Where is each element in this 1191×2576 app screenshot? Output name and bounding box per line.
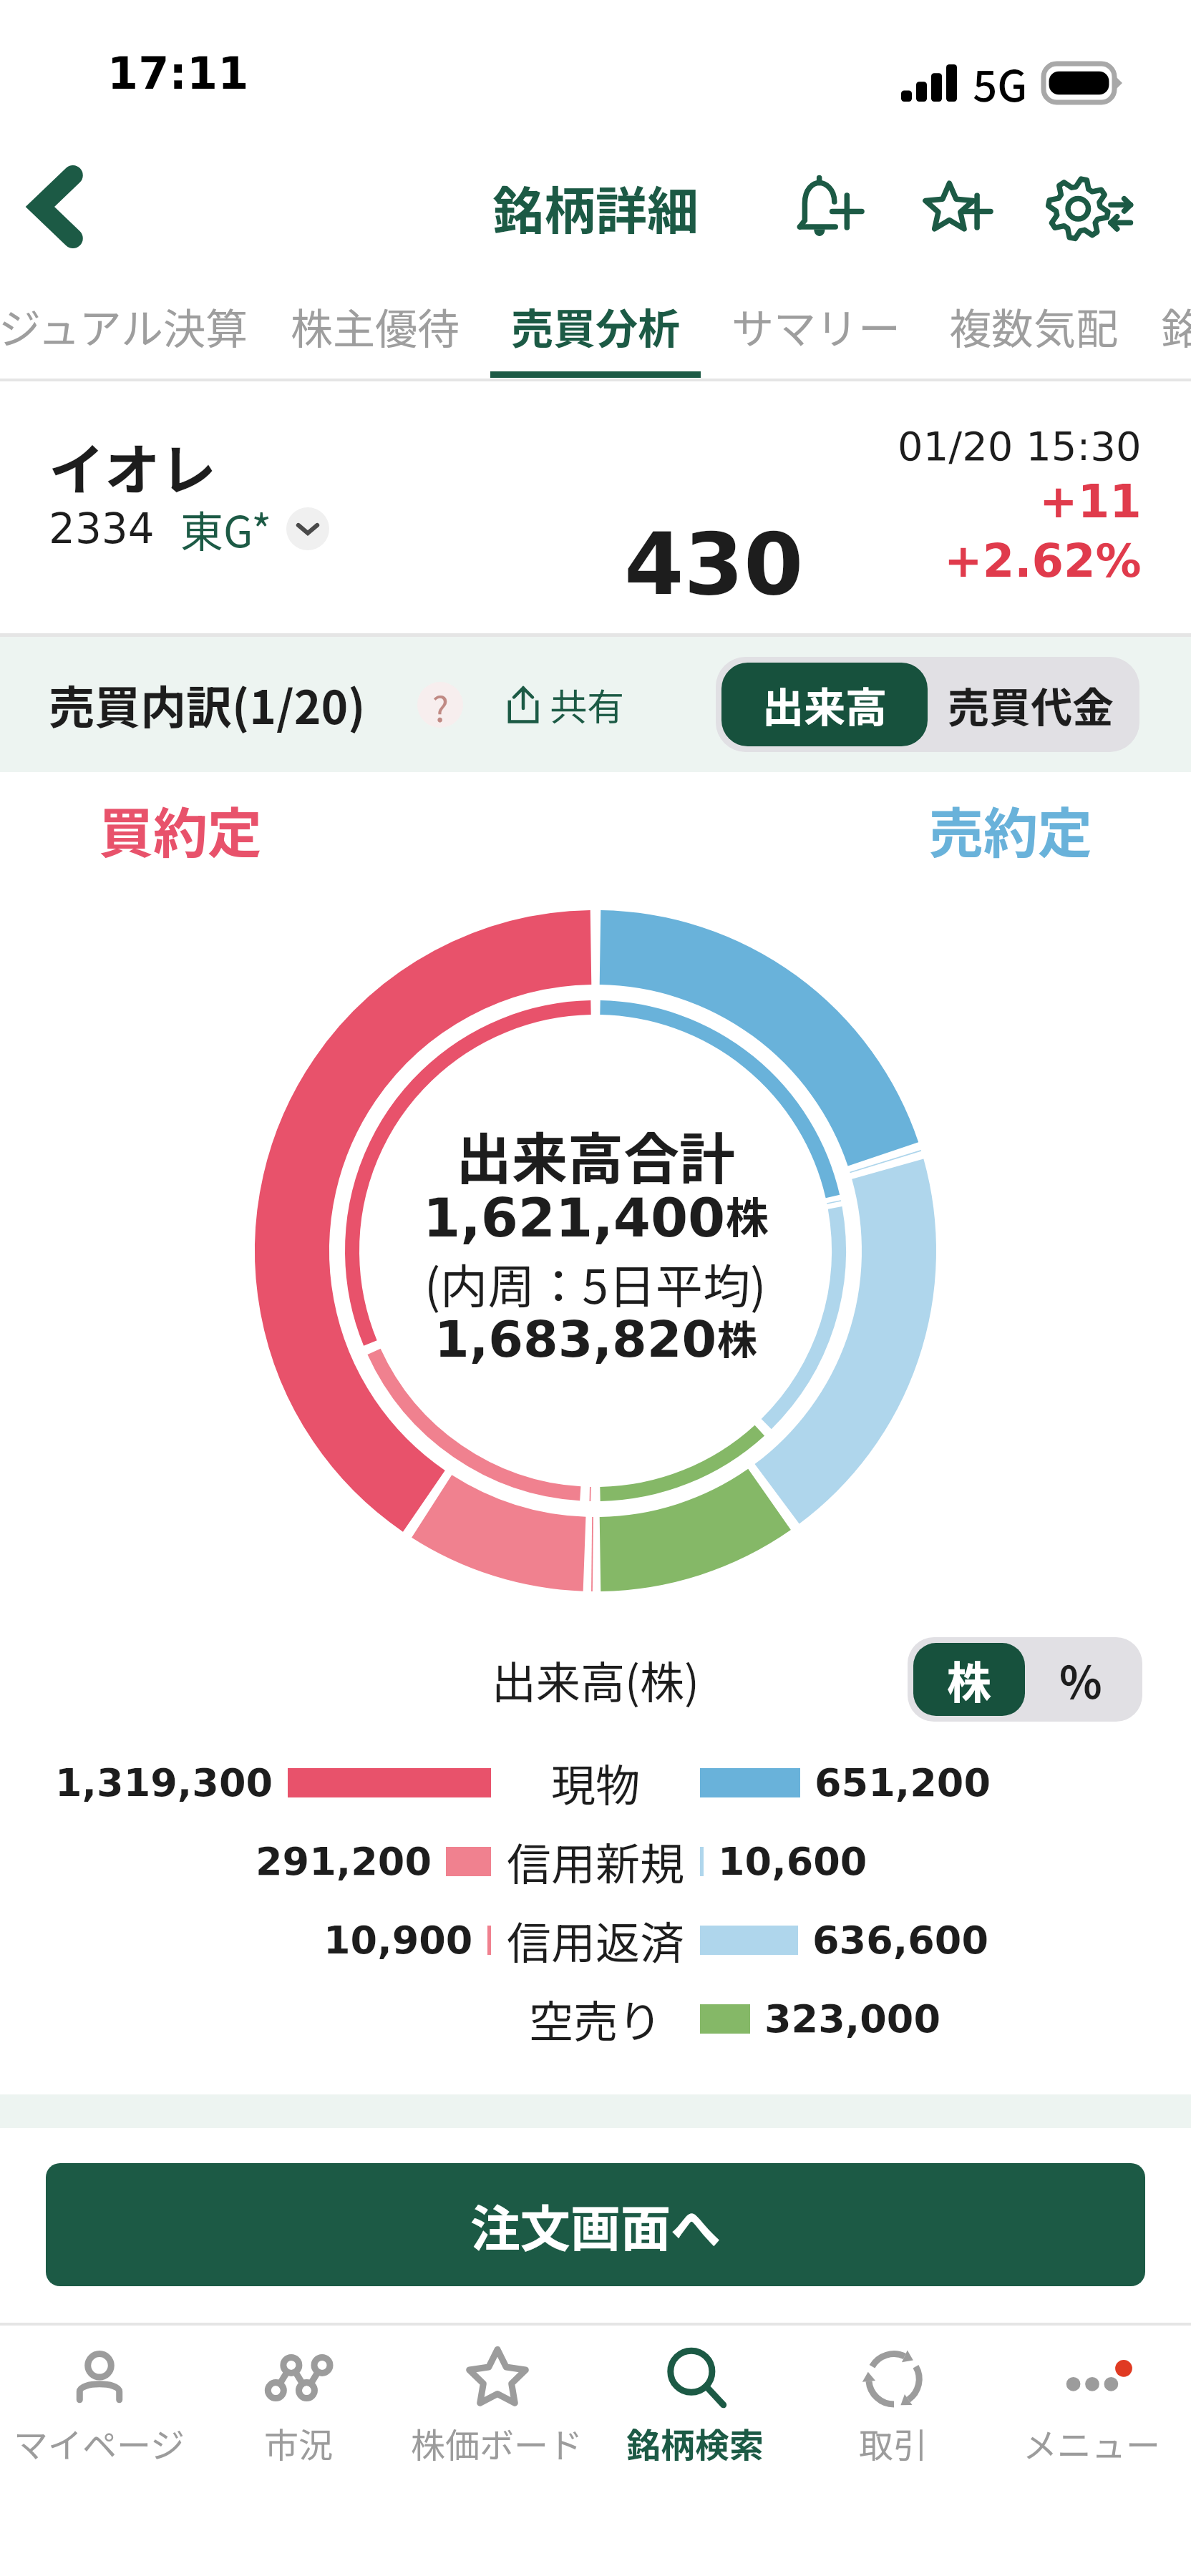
- staticText: 17:11: [107, 47, 249, 99]
- staticText: 銘柄検索: [626, 2418, 764, 2468]
- button[interactable]: 株: [913, 1643, 1025, 1716]
- button[interactable]: 複数気配: [924, 278, 1143, 381]
- staticText: 売買代金: [948, 675, 1114, 735]
- staticText: 売買分析: [511, 296, 681, 356]
- button[interactable]: 銘: [1137, 278, 1191, 381]
- staticText: 株: [717, 1308, 757, 1366]
- button[interactable]: 株価ボード: [398, 2326, 596, 2504]
- staticText: %: [1059, 1647, 1102, 1712]
- staticText: 10,900: [324, 1918, 473, 1963]
- button[interactable]: 売買分析: [486, 278, 705, 381]
- button[interactable]: 市場を切り替え: [286, 507, 329, 550]
- button[interactable]: マイページ: [0, 2326, 199, 2504]
- staticText: 複数気配: [949, 296, 1119, 356]
- staticText: 出来高: [762, 675, 888, 735]
- staticText: 注文画面へ: [470, 2189, 721, 2261]
- button[interactable]: 注文画面へ: [46, 2163, 1145, 2286]
- staticText: 現物: [551, 1750, 641, 1815]
- button[interactable]: お気に入り追加: [912, 160, 1006, 254]
- button[interactable]: 出来高: [721, 663, 928, 746]
- staticText: サマリー: [731, 296, 901, 356]
- staticText: 株: [947, 1647, 992, 1712]
- button[interactable]: %: [1025, 1643, 1137, 1716]
- staticText: +11: [1039, 475, 1142, 529]
- button[interactable]: 銘柄検索: [596, 2326, 794, 2504]
- staticText: (内周：5日平均): [424, 1249, 767, 1317]
- staticText: ジュアル決算: [0, 296, 248, 356]
- staticText: 5G: [973, 52, 1028, 114]
- staticText: 651,200: [815, 1760, 991, 1805]
- staticText: 株主優待: [291, 296, 460, 356]
- button[interactable]: 共有: [501, 670, 625, 738]
- staticText: 01/20 15:30: [898, 423, 1142, 469]
- staticText: 買約定: [99, 790, 262, 869]
- staticText: 売約定: [929, 790, 1092, 869]
- button[interactable]: 取引: [794, 2326, 993, 2504]
- staticText: イオレ: [49, 426, 217, 507]
- staticText: 株価ボード: [411, 2418, 583, 2468]
- staticText: マイページ: [14, 2418, 185, 2468]
- staticText: 636,600: [812, 1918, 988, 1963]
- staticText: 空売り: [529, 1986, 663, 2051]
- staticText: 1,621,400: [423, 1186, 726, 1249]
- staticText: メニュー: [1023, 2418, 1161, 2468]
- staticText: 430: [624, 514, 804, 615]
- staticText: 信用新規: [507, 1829, 685, 1893]
- button[interactable]: ヘルプ: [417, 682, 463, 728]
- button[interactable]: 市況: [199, 2326, 398, 2504]
- button[interactable]: 株主優待: [266, 278, 485, 381]
- staticText: 10,600: [718, 1839, 867, 1884]
- staticText: 銘柄詳細: [492, 170, 699, 244]
- staticText: 291,200: [256, 1839, 432, 1884]
- staticText: 東G*: [180, 497, 272, 560]
- button[interactable]: ジュアル決算: [0, 278, 276, 381]
- staticText: 共有: [550, 678, 625, 731]
- button[interactable]: 戻る: [9, 160, 102, 253]
- staticText: 銘: [1161, 296, 1191, 356]
- staticText: 1,319,300: [55, 1760, 273, 1805]
- staticText: 株: [726, 1184, 769, 1246]
- staticText: 市況: [264, 2418, 334, 2468]
- staticText: 2334: [49, 504, 155, 553]
- staticText: 売買内訳(1/20): [49, 671, 366, 738]
- button[interactable]: メニュー: [993, 2326, 1191, 2504]
- button[interactable]: 株価アラート追加: [782, 160, 876, 254]
- button[interactable]: 売買代金: [928, 663, 1134, 746]
- staticText: 1,683,820: [434, 1310, 717, 1368]
- staticText: 取引: [859, 2418, 928, 2468]
- staticText: ?: [432, 682, 449, 728]
- staticText: 信用返済: [507, 1908, 685, 1972]
- staticText: +2.62%: [944, 535, 1142, 588]
- button[interactable]: 設定: [1044, 160, 1139, 254]
- staticText: 出来高(株): [492, 1647, 699, 1712]
- staticText: 323,000: [764, 1996, 940, 2041]
- staticText: 出来高合計: [456, 1115, 736, 1196]
- button[interactable]: サマリー: [706, 278, 925, 381]
